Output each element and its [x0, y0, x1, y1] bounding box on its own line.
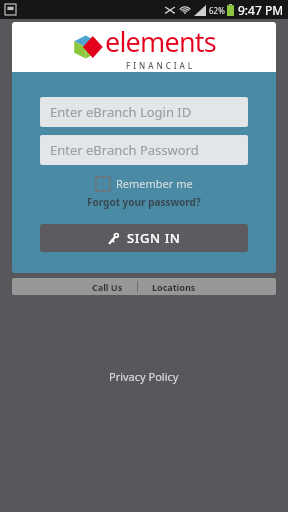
button[interactable]: Remember me: [96, 174, 193, 193]
staticText: Call Us: [92, 281, 123, 293]
staticText: Forgot your password?: [87, 195, 201, 209]
staticText: Enter eBranch Login ID: [50, 103, 192, 121]
button[interactable]: Privacy Policy: [103, 363, 185, 390]
staticText: Privacy Policy: [109, 369, 179, 384]
staticText: SIGN IN: [127, 229, 181, 247]
staticText: Enter eBranch Password: [50, 141, 199, 159]
button[interactable]: SIGN IN: [40, 224, 248, 252]
staticText: FINANCIAL: [126, 60, 196, 71]
staticText: 9:47 PM: [238, 2, 284, 18]
button[interactable]: Locations: [138, 279, 210, 295]
button[interactable]: Enter eBranch Password: [40, 135, 248, 165]
button[interactable]: Call Us: [78, 279, 137, 295]
button[interactable]: Forgot your password?: [83, 193, 205, 211]
staticText: Locations: [152, 281, 196, 293]
staticText: Remember me: [116, 176, 193, 191]
staticText: elements: [105, 23, 216, 60]
staticText: 62%: [209, 5, 225, 16]
button[interactable]: Enter eBranch Login ID: [40, 97, 248, 127]
